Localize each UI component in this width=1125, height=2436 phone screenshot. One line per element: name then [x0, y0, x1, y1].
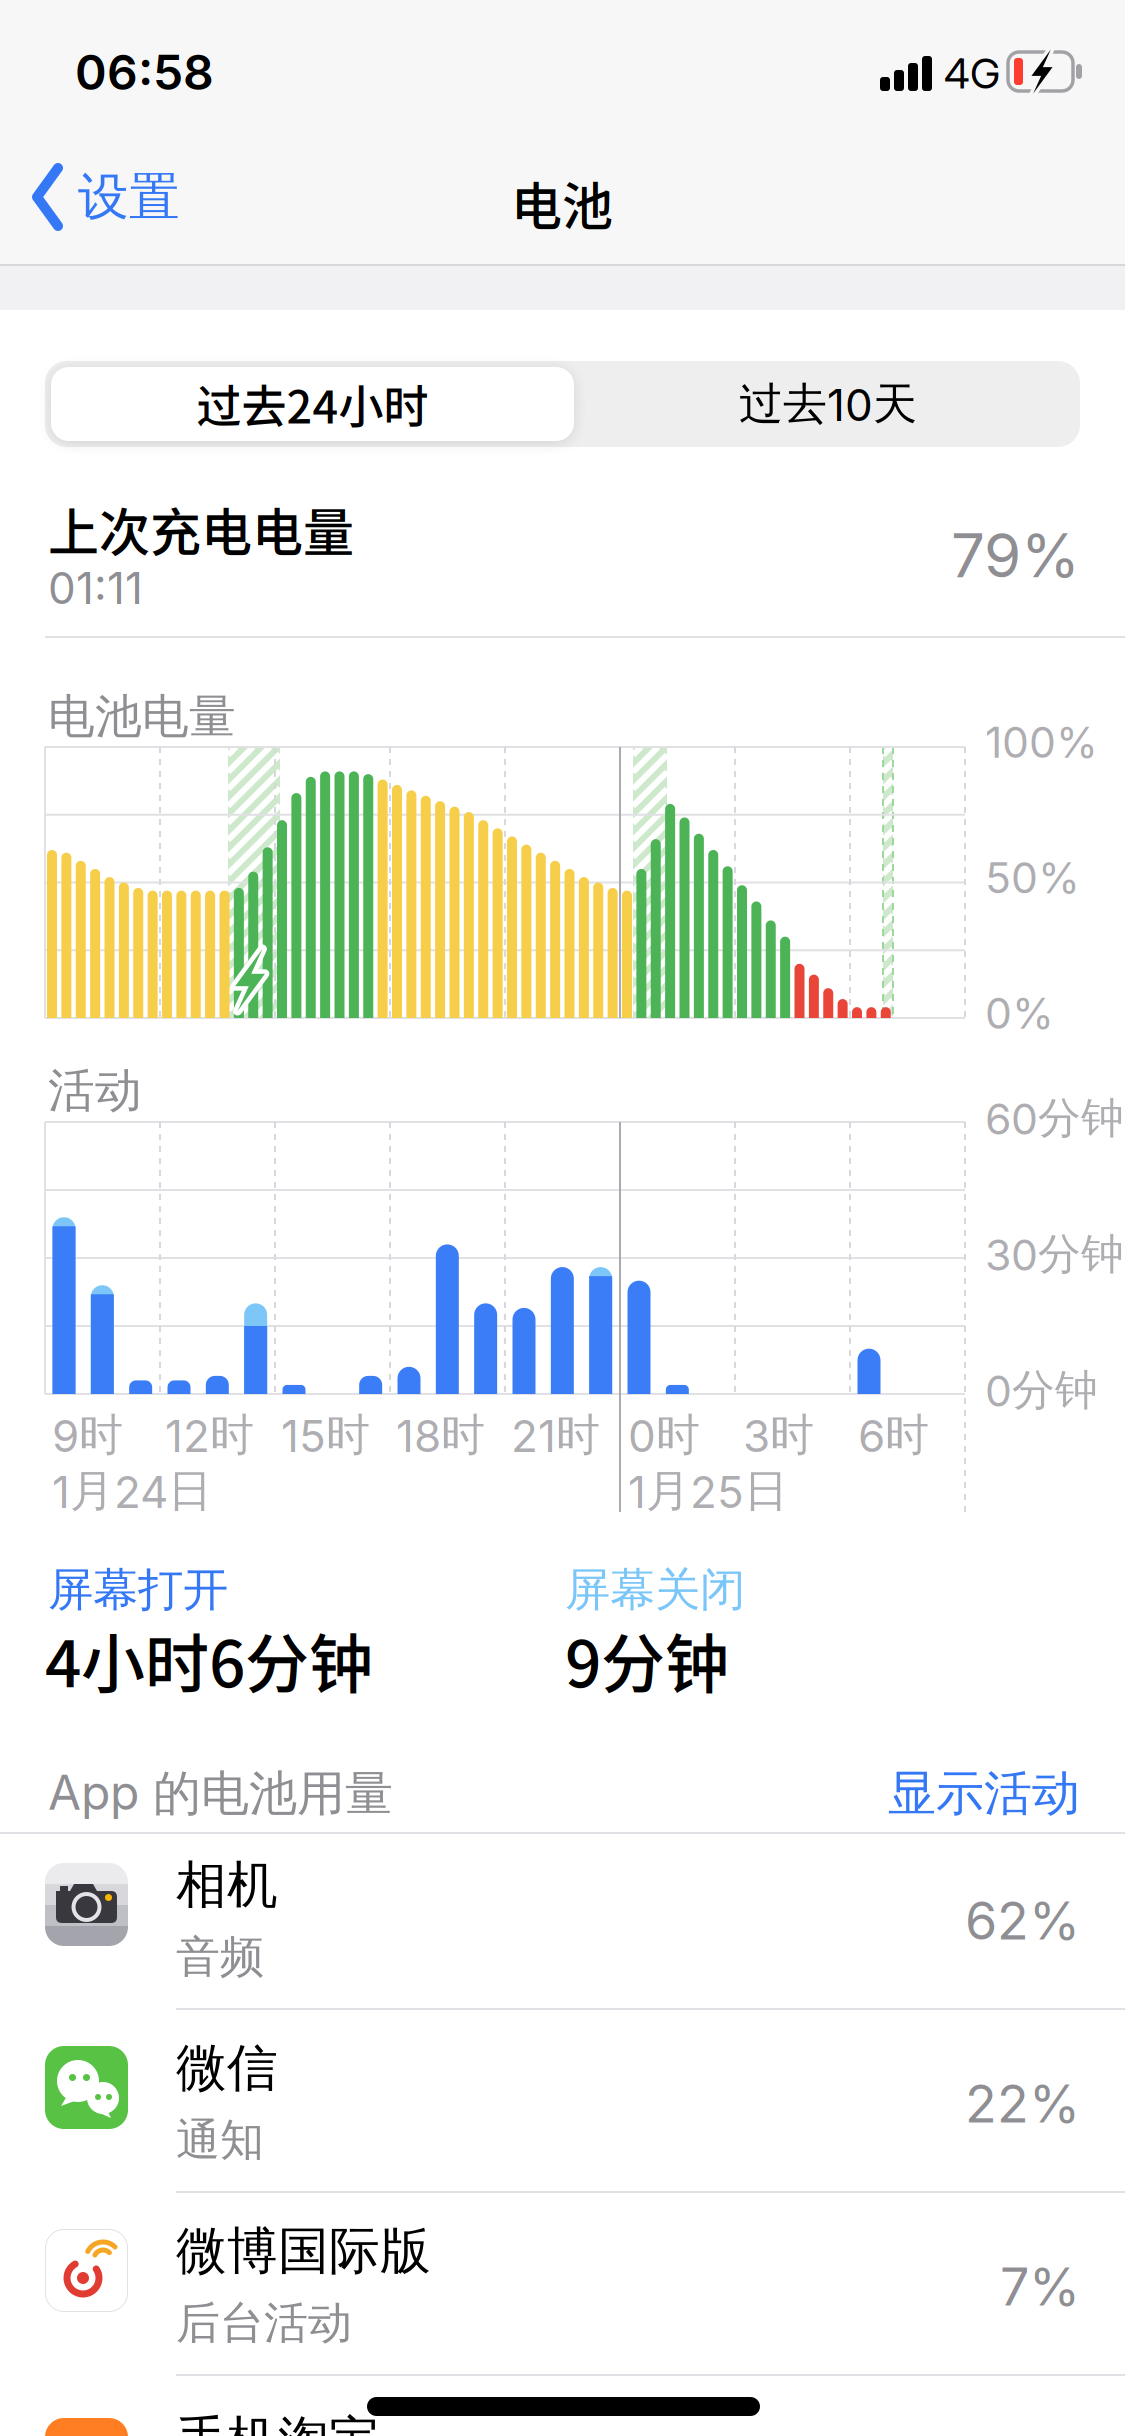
- staticText: 手机淘宝: [176, 2409, 380, 2436]
- staticText: 79%: [951, 520, 1080, 591]
- staticText: 15时: [281, 1408, 370, 1462]
- staticText: 3时: [743, 1408, 814, 1462]
- staticText: 62%: [965, 1890, 1080, 1951]
- staticText: 21时: [511, 1408, 600, 1462]
- staticText: 30分钟: [985, 1228, 1124, 1280]
- staticText: 音频: [176, 1930, 264, 1984]
- staticText: 微博国际版: [176, 2220, 431, 2282]
- staticText: 7%: [1000, 2256, 1080, 2317]
- staticText: 100%: [985, 717, 1098, 767]
- staticText: 过去24小时: [196, 371, 428, 437]
- staticText: 18时: [396, 1408, 485, 1462]
- staticText: 屏幕关闭: [565, 1562, 745, 1618]
- button[interactable]: 手机淘宝: [0, 2389, 1125, 2436]
- staticText: 9时: [52, 1408, 123, 1462]
- staticText: 屏幕打开: [48, 1562, 228, 1618]
- staticText: 6时: [858, 1408, 929, 1462]
- staticText: 通知: [176, 2113, 264, 2167]
- staticText: 显示活动: [888, 1764, 1080, 1823]
- staticText: 4G: [944, 49, 1000, 98]
- staticText: 相机: [176, 1854, 278, 1916]
- staticText: 1月25日: [628, 1464, 788, 1518]
- button[interactable]: 过去24小时: [51, 367, 574, 441]
- staticText: App 的电池用量: [48, 1764, 393, 1823]
- staticText: 微信: [176, 2037, 278, 2099]
- staticText: 过去10天: [739, 377, 917, 431]
- staticText: 0分钟: [985, 1364, 1098, 1416]
- button[interactable]: 微博国际版: [0, 2200, 1125, 2375]
- staticText: 0%: [985, 988, 1054, 1038]
- staticText: 活动: [48, 1062, 142, 1119]
- staticText: 电池电量: [48, 688, 236, 745]
- button[interactable]: 显示活动: [780, 1764, 1080, 1824]
- staticText: 上次充电电量: [48, 492, 354, 566]
- staticText: 9分钟: [565, 1613, 729, 1706]
- staticText: 1月24日: [52, 1464, 212, 1518]
- button[interactable]: 相机: [0, 1834, 1125, 2009]
- staticText: 01:11: [48, 562, 143, 614]
- staticText: 设置: [78, 166, 180, 228]
- staticText: 12时: [165, 1408, 254, 1462]
- staticText: 4小时6分钟: [45, 1613, 373, 1706]
- button[interactable]: 微信: [0, 2017, 1125, 2192]
- staticText: 50%: [985, 852, 1080, 903]
- staticText: 22%: [965, 2073, 1080, 2134]
- button[interactable]: 设置: [0, 160, 260, 234]
- staticText: 后台活动: [176, 2296, 352, 2350]
- button[interactable]: 过去10天: [578, 367, 1078, 441]
- staticText: 电池: [511, 166, 613, 240]
- staticText: 0时: [628, 1408, 700, 1462]
- staticText: 60分钟: [985, 1092, 1124, 1144]
- staticText: 06:58: [75, 44, 214, 101]
